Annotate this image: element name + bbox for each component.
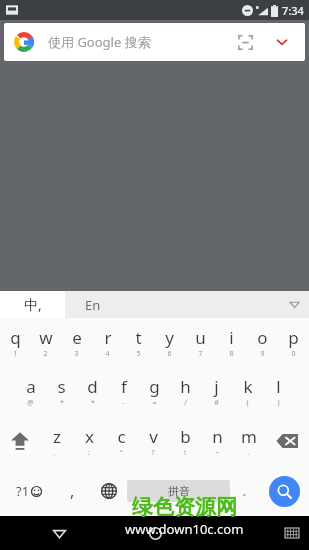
button[interactable]: Change keyboard (91, 466, 127, 516)
button[interactable]: b (169, 416, 201, 466)
button[interactable]: y (154, 318, 185, 367)
button[interactable]: Switch input method (281, 522, 303, 544)
button[interactable]: z (40, 416, 73, 466)
button[interactable]: Backspace (265, 416, 309, 466)
staticText: e (72, 326, 82, 349)
button[interactable]: q (0, 318, 30, 367)
staticText: j (214, 375, 219, 398)
button[interactable]: l (263, 367, 294, 416)
button[interactable]: c (105, 416, 137, 466)
staticText: 5 (136, 349, 141, 359)
button[interactable]: 拼音 (127, 480, 230, 502)
button[interactable]: , (53, 466, 91, 516)
staticText: w (39, 326, 53, 349)
staticText: 使用 Google 搜索 (48, 33, 151, 51)
staticText: 0 (291, 349, 296, 359)
staticText: u (195, 326, 206, 349)
button[interactable]: a (15, 367, 46, 416)
staticText: z (53, 425, 61, 448)
button[interactable]: p (278, 318, 309, 367)
staticText: f (121, 375, 127, 398)
staticText: : (88, 448, 90, 458)
button[interactable]: m (233, 416, 265, 466)
staticText: 2 (43, 349, 48, 359)
button[interactable]: j (201, 367, 232, 416)
staticText: y (165, 326, 174, 349)
staticText: l (276, 375, 281, 398)
staticText: ? (151, 448, 155, 458)
staticText: v (149, 425, 158, 448)
staticText: / (184, 398, 187, 408)
staticText: 拼音 (168, 484, 190, 498)
button[interactable]: 。 (230, 466, 264, 516)
button[interactable]: x (73, 416, 105, 466)
staticText: b (180, 425, 191, 448)
staticText: p (288, 326, 299, 349)
staticText: 7 (198, 349, 203, 359)
button[interactable]: h (170, 367, 201, 416)
staticText: ?1 (16, 482, 30, 500)
staticText: - (122, 398, 125, 408)
button[interactable]: 使用 Google 搜索 (4, 23, 305, 61)
button[interactable]: v (137, 416, 169, 466)
button[interactable]: r (92, 318, 123, 367)
button[interactable]: Search (264, 466, 304, 516)
button[interactable]: d (77, 367, 108, 416)
staticText: . (248, 448, 250, 458)
staticText: h (180, 375, 191, 398)
staticText: ! (184, 448, 186, 458)
button[interactable]: n (201, 416, 233, 466)
staticText: = (152, 398, 157, 408)
button[interactable]: e (61, 318, 92, 367)
button[interactable]: f (108, 367, 139, 416)
button[interactable]: Home (138, 516, 172, 550)
staticText: 。 (242, 484, 253, 498)
button[interactable]: Google Lens (231, 28, 259, 56)
staticText: m (241, 425, 257, 448)
staticText: 3 (74, 349, 79, 359)
staticText: ~ (215, 448, 220, 458)
staticText: x (85, 425, 94, 448)
button[interactable]: g (139, 367, 170, 416)
staticText: i (229, 326, 234, 349)
button[interactable]: o (247, 318, 278, 367)
staticText: 4 (105, 349, 110, 359)
button[interactable]: Hide keyboard (40, 516, 78, 550)
staticText: 、 (53, 448, 60, 457)
staticText: 绿色资源网 (132, 494, 237, 520)
staticText: r (104, 326, 112, 349)
staticText: ( (246, 398, 249, 408)
button[interactable]: Shift (0, 416, 40, 466)
staticText: @ (27, 398, 34, 408)
staticText: c (117, 425, 126, 448)
staticText: " (120, 448, 123, 458)
button[interactable]: s (46, 367, 77, 416)
staticText: 8 (229, 349, 234, 359)
staticText: q (10, 326, 21, 349)
staticText: # (214, 398, 219, 408)
staticText: d (87, 375, 98, 398)
staticText: 1 (13, 349, 18, 359)
staticText: * (91, 398, 95, 408)
button[interactable]: u (185, 318, 216, 367)
staticText: o (257, 326, 268, 349)
button[interactable]: ?1 (5, 466, 53, 516)
staticText: 6 (167, 349, 172, 359)
button[interactable]: t (123, 318, 154, 367)
button[interactable]: En (65, 291, 309, 318)
staticText: a (26, 375, 36, 398)
button[interactable]: Collapse (269, 29, 295, 55)
button[interactable]: 中, (0, 291, 65, 318)
button[interactable]: k (232, 367, 263, 416)
staticText: s (57, 375, 66, 398)
staticText: 7:34 (282, 3, 304, 18)
staticText: * (60, 398, 64, 408)
staticText: t (135, 326, 142, 349)
button[interactable]: i (216, 318, 247, 367)
staticText: 中, (24, 295, 42, 314)
staticText: n (212, 425, 223, 448)
staticText: En (85, 296, 101, 314)
button[interactable]: w (30, 318, 61, 367)
staticText: k (243, 375, 253, 398)
staticText: ) (277, 398, 280, 408)
